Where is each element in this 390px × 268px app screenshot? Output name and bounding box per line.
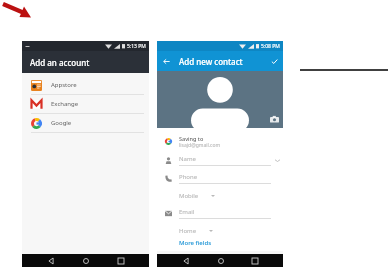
button[interactable]: Back <box>179 254 192 267</box>
button[interactable]: Back <box>157 51 283 71</box>
button[interactable]: Google <box>22 114 149 132</box>
staticText: Appstore <box>51 81 77 89</box>
staticText: Exchange <box>51 100 79 108</box>
button[interactable]: Exchange <box>22 95 149 113</box>
button[interactable]: Phone <box>157 169 283 187</box>
staticText: Google <box>51 119 72 127</box>
staticText: Phone <box>179 173 198 181</box>
staticText: 5:13 PM <box>127 43 146 50</box>
button[interactable]: Home <box>214 254 227 267</box>
button[interactable]: Name <box>157 151 283 169</box>
button[interactable]: Saving to <box>157 132 283 151</box>
staticText: 5:08 PM <box>261 43 280 50</box>
staticText: Email <box>179 208 195 216</box>
button[interactable]: Appstore <box>22 76 149 94</box>
button[interactable]: Save <box>265 52 283 70</box>
button[interactable]: Email <box>157 204 283 222</box>
button[interactable]: More fields <box>157 239 283 251</box>
staticText: lisajd@gmail.com <box>179 142 221 149</box>
button[interactable]: Recent apps <box>114 254 127 267</box>
button[interactable]: Home <box>157 222 283 239</box>
button[interactable]: Back <box>157 52 175 70</box>
staticText: Saving to <box>179 135 204 142</box>
button[interactable]: Home <box>79 254 92 267</box>
staticText: Name <box>179 155 196 163</box>
button[interactable]: Add photo <box>157 71 283 128</box>
staticText: Add an account <box>30 57 90 68</box>
staticText: Home <box>179 227 197 235</box>
staticText: More fields <box>179 239 212 247</box>
button[interactable]: Recent apps <box>248 254 261 267</box>
button[interactable]: Mobile <box>157 187 283 204</box>
staticText: Add new contact <box>179 56 243 67</box>
button[interactable]: Back <box>44 254 57 267</box>
staticText: Mobile <box>179 192 199 200</box>
button[interactable]: Add an account <box>22 51 149 73</box>
